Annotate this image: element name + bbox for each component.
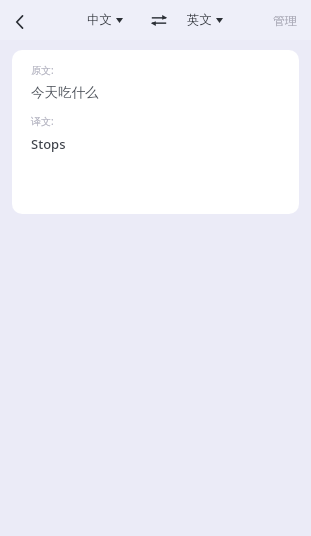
button[interactable]: Swap languages (144, 6, 174, 34)
staticText: 译文: (31, 114, 54, 128)
button[interactable]: 管理 (269, 7, 301, 34)
button[interactable]: Back (4, 6, 36, 38)
staticText: 原文: (31, 63, 54, 77)
button[interactable]: 原文: (12, 50, 299, 214)
staticText: 今天吃什么 (31, 84, 99, 101)
staticText: 管理 (273, 13, 297, 28)
button[interactable]: 英文 (183, 7, 227, 33)
button[interactable]: 中文 (83, 7, 127, 33)
staticText: 中文 (87, 12, 112, 28)
staticText: Stops (31, 135, 66, 153)
staticText: 英文 (187, 12, 212, 28)
